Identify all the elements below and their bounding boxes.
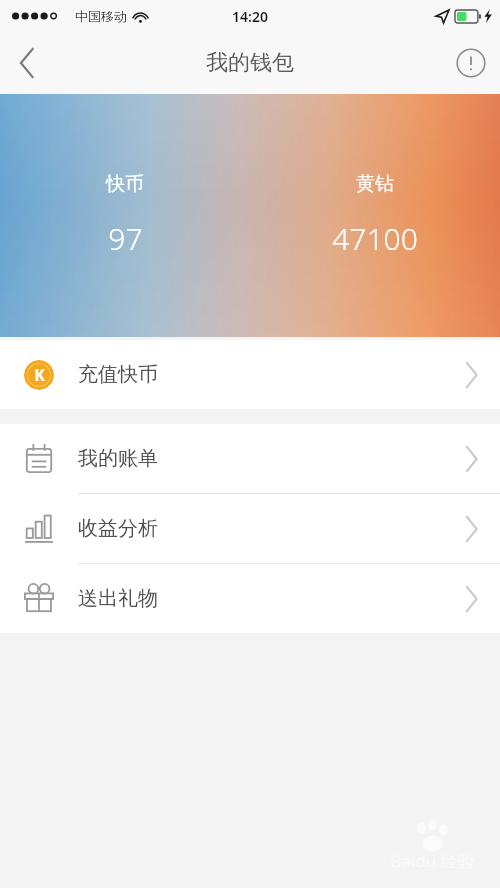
staticText: 中国移动	[75, 8, 127, 24]
button[interactable]: K	[0, 340, 500, 409]
staticText: 收益分析	[78, 516, 158, 541]
staticText: 47100	[332, 218, 418, 259]
staticText: 我的钱包	[206, 49, 294, 77]
staticText: 送出礼物	[78, 586, 158, 611]
staticText: 我的账单	[78, 446, 158, 471]
staticText: 97	[108, 218, 143, 259]
staticText: 充值快币	[78, 362, 158, 387]
staticText: K	[34, 364, 45, 386]
staticText: 黄钻	[356, 172, 394, 196]
button[interactable]: Back	[0, 32, 54, 94]
staticText: 14:20	[232, 7, 268, 26]
button[interactable]: Help	[442, 32, 500, 94]
button[interactable]: 送出礼物	[0, 564, 500, 633]
button[interactable]: 我的账单	[0, 424, 500, 493]
staticText: 快币	[106, 172, 144, 196]
button[interactable]: 收益分析	[0, 494, 500, 563]
